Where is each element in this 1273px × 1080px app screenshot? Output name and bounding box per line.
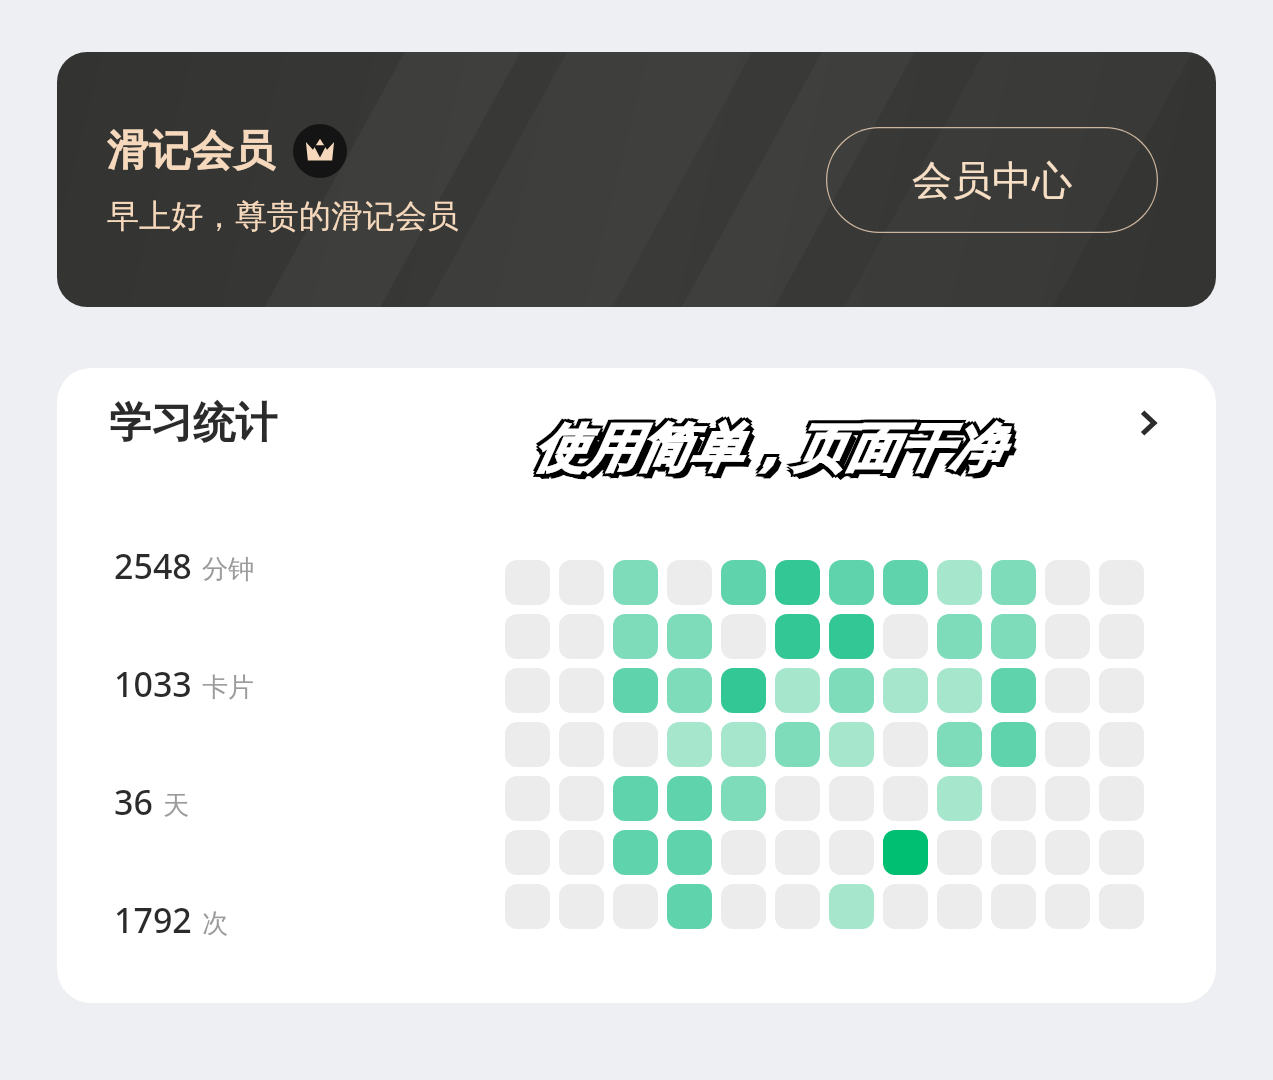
staticText: 36	[114, 779, 153, 825]
staticText: 早上好，尊贵的滑记会员	[107, 196, 459, 236]
button[interactable]: 学习统计	[57, 368, 1216, 478]
staticText: 会员中心	[912, 155, 1072, 205]
other: 查看学习统计详情	[1128, 403, 1168, 443]
staticText: 使用简单，页面干净	[537, 420, 1005, 486]
staticText: 次	[202, 907, 228, 940]
staticText: 1792	[114, 897, 192, 943]
staticText: 天	[163, 789, 189, 822]
staticText: 使用简单，页面干净	[530, 413, 998, 479]
staticText: 1033	[114, 661, 192, 707]
button[interactable]: 滑记会员	[57, 52, 1216, 307]
button[interactable]: 会员中心	[826, 127, 1158, 233]
staticText: 分钟	[202, 553, 254, 586]
staticText: 使用简单，页面干净	[533, 416, 1001, 482]
staticText: 使用简单，页面干净	[533, 413, 1001, 479]
staticText: 使用简单，页面干净	[536, 416, 1004, 482]
staticText: 学习统计	[109, 397, 277, 450]
staticText: 2548	[114, 543, 192, 589]
staticText: 使用简单，页面干净	[536, 413, 1004, 479]
staticText: 使用简单，页面干净	[530, 419, 998, 485]
staticText: 滑记会员	[107, 125, 275, 178]
staticText: 使用简单，页面干净	[530, 416, 998, 482]
staticText: 使用简单，页面干净	[533, 419, 1001, 485]
staticText: 使用简单，页面干净	[538, 421, 1006, 487]
staticText: 卡片	[202, 671, 254, 704]
staticText: 使用简单，页面干净	[536, 419, 1004, 485]
